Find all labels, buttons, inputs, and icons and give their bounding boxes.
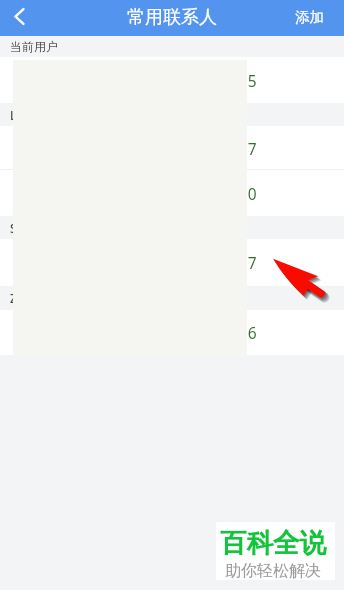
- staticText: 当前用户: [10, 39, 58, 54]
- staticText: 助你轻松解决: [225, 561, 321, 581]
- staticText: 13500000006: [159, 322, 257, 343]
- button[interactable]: 刘伟: [0, 170, 344, 216]
- button[interactable]: 赵磊: [0, 310, 344, 355]
- button[interactable]: 张三: [0, 57, 344, 103]
- staticText: 百科全说: [220, 526, 326, 559]
- staticText: 13900000007: [159, 138, 257, 159]
- staticText: L: [10, 107, 17, 123]
- button[interactable]: 李小明: [0, 126, 344, 170]
- staticText: 常用联系人: [127, 6, 217, 29]
- staticText: 13800000005: [159, 70, 257, 91]
- button[interactable]: Back: [0, 0, 36, 36]
- staticText: Z: [10, 290, 17, 306]
- button[interactable]: 孙晓燕: [0, 239, 344, 286]
- staticText: S: [10, 220, 17, 236]
- staticText: 13700000000: [159, 183, 257, 204]
- staticText: 13600000007: [159, 252, 257, 273]
- button[interactable]: 添加: [275, 3, 344, 33]
- staticText: 添加: [295, 8, 324, 26]
